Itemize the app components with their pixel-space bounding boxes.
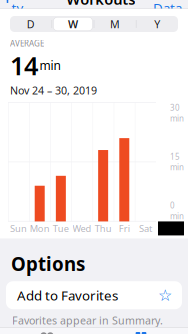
staticText: W [68,17,78,31]
staticText: Favorites appear in Summary. [12,313,163,327]
staticText: Workouts [66,0,135,9]
button[interactable]: Y [136,16,178,32]
staticText: ☆ [158,286,172,304]
button[interactable]: Browse [94,328,188,334]
button[interactable]: Activity [0,0,52,20]
button[interactable]: Add to Favorites [0,281,188,309]
staticText: 15 min [170,151,184,172]
staticText: Mon [30,222,50,235]
staticText: AVERAGE [10,38,44,49]
staticText: M [110,17,120,31]
button[interactable]: Add Data [149,0,188,20]
staticText: 30 min [170,102,184,124]
staticText: 14 [10,49,38,82]
staticText: Fri [119,222,130,235]
staticText: 0 min [170,200,184,221]
staticText: Y [154,17,160,31]
staticText: Sat [139,222,152,235]
staticText: Nov 24 – 30, 2019 [10,83,97,97]
staticText: D [27,17,35,31]
staticText: Tue [53,222,69,235]
staticText: min [39,57,60,73]
staticText: Add to Favorites [17,286,118,304]
staticText: Sun [10,222,27,235]
button[interactable]: Summary [0,328,94,334]
button[interactable]: W [52,16,94,32]
button[interactable]: M [94,16,136,32]
staticText: Add Data [153,0,182,17]
staticText: Wed [72,222,91,235]
staticText: Options [11,251,85,276]
button[interactable]: D [10,16,52,32]
staticText: Activity [11,0,48,17]
staticText: Thu [95,222,112,235]
